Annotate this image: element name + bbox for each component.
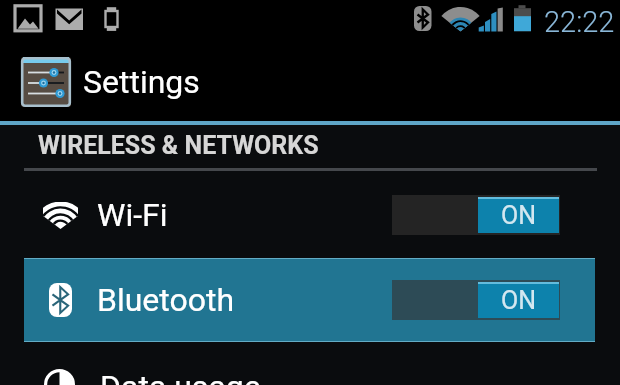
button[interactable]: Toggle, on [392, 280, 560, 320]
button[interactable]: Bluetooth [0, 258, 620, 342]
staticText: ON [501, 201, 537, 230]
button[interactable]: Toggle, on [392, 195, 560, 235]
staticText: Wi-Fi [97, 196, 168, 234]
staticText: 22:22 [544, 5, 615, 39]
staticText: WIRELESS & NETWORKS [38, 131, 319, 160]
staticText: ON [501, 286, 537, 315]
button[interactable]: Data usage [0, 342, 620, 385]
button[interactable]: Settings [0, 42, 620, 122]
staticText: Bluetooth [97, 281, 235, 319]
staticText: Data usage [100, 368, 261, 385]
button[interactable]: Wi-Fi [0, 171, 620, 258]
staticText: Settings [83, 63, 200, 101]
